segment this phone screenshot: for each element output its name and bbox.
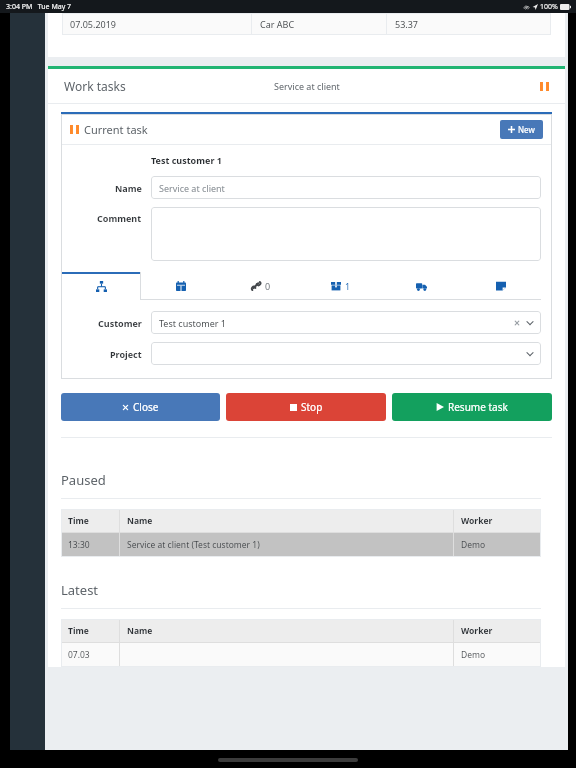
staticText: Service at client [159, 182, 225, 194]
button[interactable]: Structure [61, 272, 141, 300]
button[interactable]: Calendar [141, 272, 221, 300]
staticText: Test customer 1 [159, 317, 226, 329]
staticText: Name [127, 625, 153, 637]
staticText: Time [68, 625, 89, 637]
staticText: Paused [61, 471, 106, 489]
button[interactable] [151, 207, 541, 261]
staticText: 0 [265, 280, 271, 292]
staticText: 53.37 [395, 18, 419, 30]
staticText: Name [127, 515, 153, 527]
staticText: Test customer 1 [151, 154, 222, 166]
staticText: Comment [97, 212, 142, 224]
staticText: Current task [84, 122, 148, 137]
staticText: New [518, 124, 535, 135]
staticText: Close [133, 400, 159, 414]
staticText: 07.05.2019 [70, 18, 117, 30]
button[interactable]: Stop [226, 393, 386, 421]
button[interactable]: Materials [301, 272, 381, 300]
staticText: Service at client (Test customer 1) [127, 539, 260, 551]
staticText: 100% [540, 2, 558, 12]
staticText: Stop [301, 400, 323, 414]
staticText: 07.03 [68, 649, 90, 661]
staticText: Customer [98, 317, 142, 329]
staticText: 13:30 [68, 539, 90, 551]
button[interactable]: Test customer 1 [151, 311, 541, 334]
button[interactable]: Notes [461, 272, 541, 300]
staticText: Project [110, 348, 142, 360]
staticText: Resume task [448, 400, 508, 414]
staticText: Worker [461, 515, 493, 527]
staticText: Demo [461, 649, 486, 661]
staticText: Car ABC [260, 18, 295, 30]
staticText: Latest [61, 581, 99, 599]
staticText: Demo [461, 539, 486, 551]
button[interactable]: Attachments [221, 272, 301, 300]
staticText: Name [115, 182, 142, 194]
staticText: Work tasks [64, 78, 126, 94]
button[interactable]: Pause [533, 75, 555, 97]
button[interactable]: Transport [381, 272, 461, 300]
button[interactable]: Close [61, 393, 220, 421]
button[interactable]: Resume task [392, 393, 552, 421]
staticText: Worker [461, 625, 493, 637]
staticText: Time [68, 515, 89, 527]
button[interactable]: New [500, 120, 543, 139]
staticText: Service at client [274, 80, 340, 92]
button[interactable]: Service at client [151, 176, 541, 199]
button[interactable]: Select [151, 342, 541, 365]
staticText: 1 [345, 280, 351, 292]
staticText: 3:04 PM Tue May 7 [6, 2, 72, 12]
